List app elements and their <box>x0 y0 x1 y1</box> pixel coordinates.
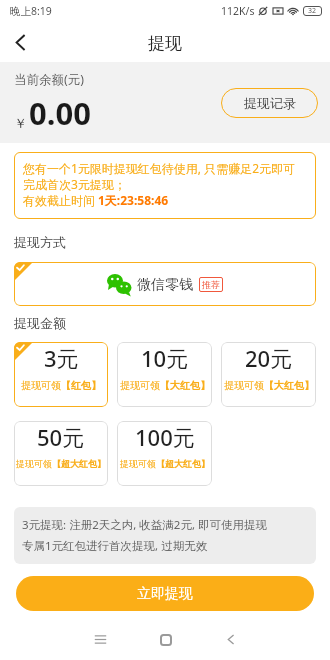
staticText: 112K/s <box>221 4 255 18</box>
button[interactable]: 20元 <box>221 342 316 407</box>
staticText: 提现可领 <box>16 458 52 469</box>
button[interactable]: Home <box>133 619 198 660</box>
staticText: 当前余额(元) <box>14 71 85 88</box>
staticText: 【大红包】 <box>160 379 210 392</box>
button[interactable]: 100元 <box>117 421 212 486</box>
button[interactable]: Recents <box>68 619 133 660</box>
staticText: 10元 <box>141 343 189 373</box>
staticText: 推荐 <box>202 279 220 290</box>
staticText: 100元 <box>135 422 195 452</box>
staticText: 3元 <box>44 343 79 373</box>
staticText: 微信零钱 <box>137 276 193 294</box>
staticText: 晚上8:19 <box>10 4 52 18</box>
staticText: 完成首次3元提现； <box>23 176 126 192</box>
button[interactable]: 提现记录 <box>221 88 318 118</box>
staticText: 提现方式 <box>14 234 66 250</box>
staticText: 专属1元红包进行首次提现, 过期无效 <box>22 538 208 554</box>
staticText: 【超大红包】 <box>52 458 106 469</box>
staticText: 提现可领 <box>120 458 156 469</box>
button[interactable]: 10元 <box>117 342 212 407</box>
staticText: 20元 <box>245 343 293 373</box>
staticText: 【超大红包】 <box>156 458 210 469</box>
staticText: 50元 <box>37 422 85 452</box>
staticText: 提现记录 <box>244 95 296 111</box>
button[interactable]: 50元 <box>14 421 108 486</box>
button[interactable]: 立即提现 <box>16 576 314 611</box>
staticText: 提现可领 <box>224 379 264 392</box>
staticText: 32 <box>308 6 317 16</box>
staticText: 0.00 <box>29 92 91 134</box>
button[interactable]: Back <box>0 22 40 62</box>
staticText: 您有一个1元限时提现红包待使用, 只需赚足2元即可 <box>23 160 296 176</box>
button[interactable]: 微信零钱 <box>14 262 316 306</box>
staticText: 提现 <box>148 33 182 54</box>
staticText: 【红包】 <box>61 379 101 392</box>
staticText: 提现金额 <box>14 315 66 331</box>
button[interactable]: 3元 <box>14 342 108 407</box>
staticText: 1天:23:58:46 <box>98 192 169 208</box>
staticText: 3元提现: 注册2天之内, 收益满2元, 即可使用提现 <box>22 517 267 533</box>
button[interactable]: Back <box>198 619 263 660</box>
staticText: 立即提现 <box>137 585 193 603</box>
staticText: ￥ <box>14 115 27 131</box>
staticText: 提现可领 <box>120 379 160 392</box>
staticText: 有效截止时间 <box>23 193 95 208</box>
staticText: 【大红包】 <box>264 379 314 392</box>
staticText: 提现可领 <box>21 379 61 392</box>
